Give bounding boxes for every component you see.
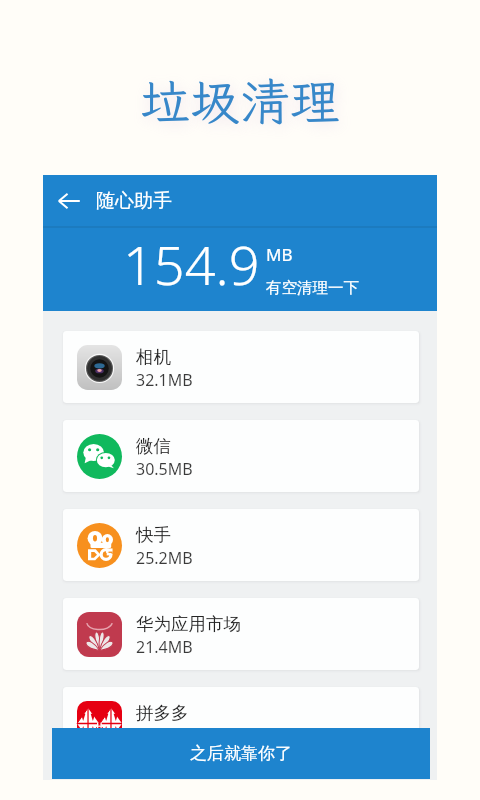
button[interactable]: 相机 (63, 331, 419, 403)
staticText: 25.2MB (136, 547, 193, 569)
staticText: 30.5MB (136, 458, 193, 480)
staticText: 21.4MB (136, 636, 193, 658)
staticText: 有空清理一下 (266, 278, 359, 298)
staticText: 154.9 (123, 227, 260, 301)
staticText: 之后就靠你了 (190, 743, 292, 764)
staticText: 微信 (136, 435, 171, 457)
button[interactable]: Back (51, 183, 87, 219)
staticText: 垃圾清理 (140, 68, 340, 134)
button[interactable]: 拼多多 (63, 687, 419, 759)
button[interactable]: 华为应用市场 (63, 598, 419, 670)
staticText: 随心助手 (96, 189, 172, 213)
button[interactable]: 微信 (63, 420, 419, 492)
staticText: 拼多多 (136, 702, 189, 724)
staticText: 快手 (136, 524, 171, 546)
staticText: 华为应用市场 (136, 613, 241, 635)
button[interactable]: 快手 (63, 509, 419, 581)
staticText: MB (266, 243, 293, 266)
button[interactable]: 之后就靠你了 (52, 728, 430, 779)
staticText: 32.1MB (136, 369, 193, 391)
staticText: 18.6MB (136, 725, 193, 747)
staticText: 相机 (136, 346, 171, 368)
